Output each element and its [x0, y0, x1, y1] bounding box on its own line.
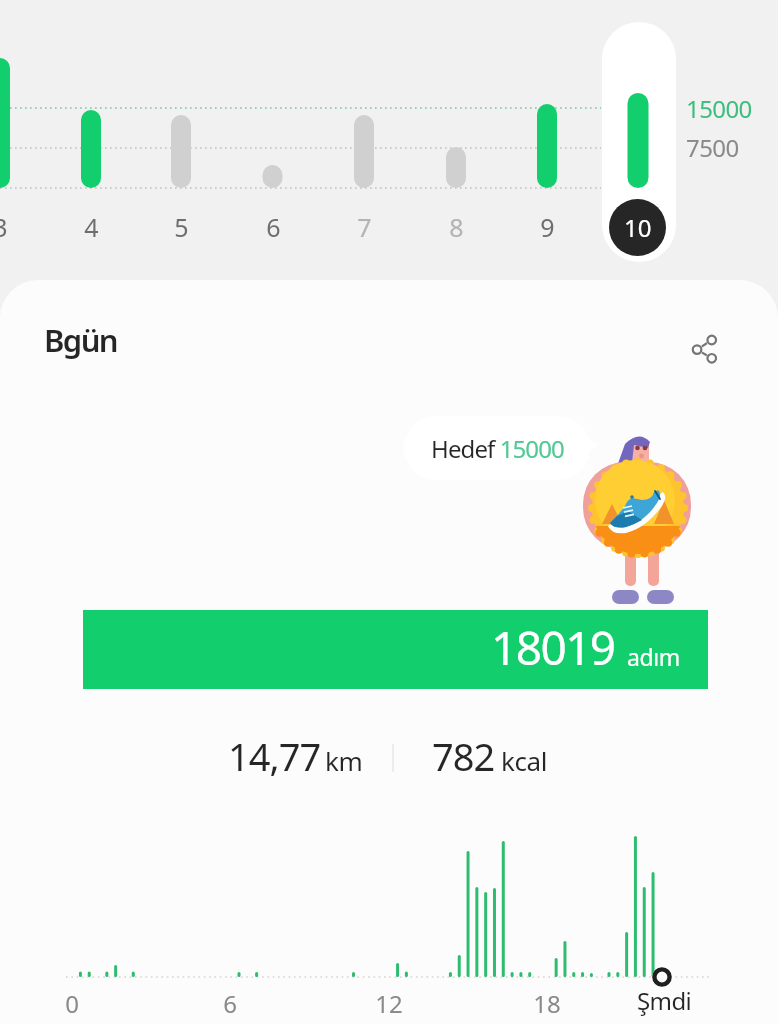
button[interactable]: Share [679, 323, 731, 375]
staticText: 0 [47, 987, 97, 1020]
button[interactable]: 18019 [83, 610, 708, 689]
staticText: 8 [449, 210, 464, 244]
staticText: 18019 [491, 616, 615, 679]
button[interactable]: 10 [609, 199, 666, 256]
button[interactable]: Bgün [44, 319, 117, 361]
button[interactable]: Hedef 15000 [404, 416, 590, 480]
staticText: Hedef 15000 [431, 432, 564, 465]
staticText: 6 [266, 210, 281, 244]
staticText: 12 [364, 987, 414, 1020]
staticText: kcal [501, 743, 548, 778]
staticText: 7500 [686, 131, 739, 164]
button[interactable]: 9 [517, 40, 577, 250]
staticText: 15000 [686, 92, 752, 125]
staticText: 6 [205, 987, 255, 1020]
button[interactable]: Şmdi [637, 984, 692, 1017]
button[interactable]: 5 [151, 40, 211, 250]
button[interactable]: 8 [426, 40, 486, 250]
staticText: 782 [432, 730, 495, 782]
staticText: adım [627, 641, 680, 672]
staticText: 10 [624, 211, 652, 244]
staticText: 4 [84, 210, 99, 244]
button[interactable]: 6 [243, 40, 303, 250]
button[interactable] [602, 22, 676, 262]
staticText: 3 [0, 210, 8, 244]
staticText: 14,77 [228, 730, 321, 782]
staticText: 7 [357, 210, 372, 244]
button[interactable]: 4 [61, 40, 121, 250]
button[interactable]: 3 [0, 40, 30, 250]
staticText: 18 [522, 987, 572, 1020]
staticText: 9 [540, 210, 555, 244]
staticText: km [325, 743, 363, 778]
button[interactable]: 7 [334, 40, 394, 250]
staticText: 5 [174, 210, 189, 244]
